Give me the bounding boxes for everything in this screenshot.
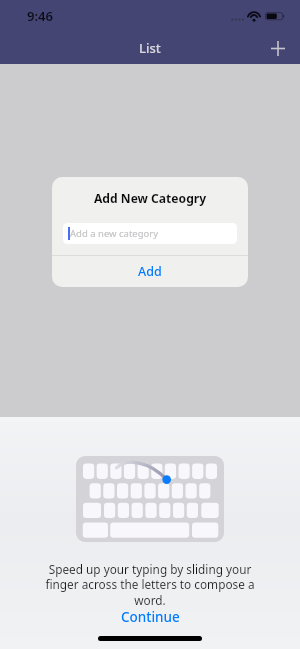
button[interactable]: Continue — [111, 606, 190, 628]
staticText: 9:46 — [27, 7, 53, 25]
button[interactable]: Add — [263, 34, 292, 63]
staticText: Add New Cateogry — [94, 190, 207, 206]
staticText: Add — [138, 263, 162, 280]
button[interactable]: Add — [52, 256, 248, 287]
staticText: Continue — [121, 608, 180, 626]
staticText: Add a new category — [70, 227, 159, 240]
staticText: List — [139, 39, 161, 57]
staticText: Speed up your typing by sliding your fin… — [42, 561, 258, 609]
button[interactable]: Add a new category — [63, 223, 237, 244]
